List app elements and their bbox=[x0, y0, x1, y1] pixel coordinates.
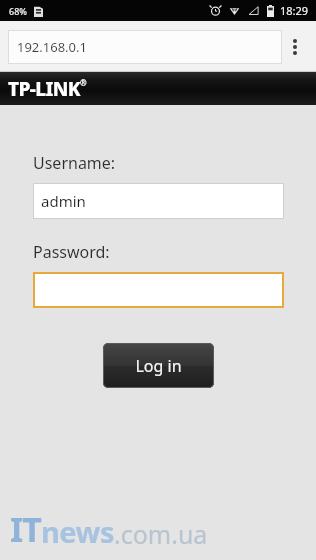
staticText: TP-LINK bbox=[8, 76, 80, 102]
button[interactable]: Password bbox=[33, 272, 284, 308]
staticText: 68% bbox=[9, 5, 27, 17]
staticText: IT bbox=[10, 506, 41, 552]
staticText: news bbox=[41, 512, 114, 551]
staticText: 192.168.0.1 bbox=[17, 38, 87, 56]
button[interactable]: admin bbox=[33, 183, 284, 219]
staticText: .com.ua bbox=[114, 517, 208, 551]
staticText: 18:29 bbox=[280, 3, 309, 18]
staticText: Password: bbox=[33, 241, 110, 263]
staticText: admin bbox=[41, 191, 86, 211]
staticText: Log in bbox=[135, 355, 182, 377]
button[interactable]: More options bbox=[282, 30, 308, 64]
staticText: Username: bbox=[33, 152, 116, 174]
button[interactable]: Log in bbox=[103, 343, 214, 388]
staticText: ® bbox=[80, 77, 87, 88]
button[interactable]: 192.168.0.1 bbox=[8, 30, 282, 64]
